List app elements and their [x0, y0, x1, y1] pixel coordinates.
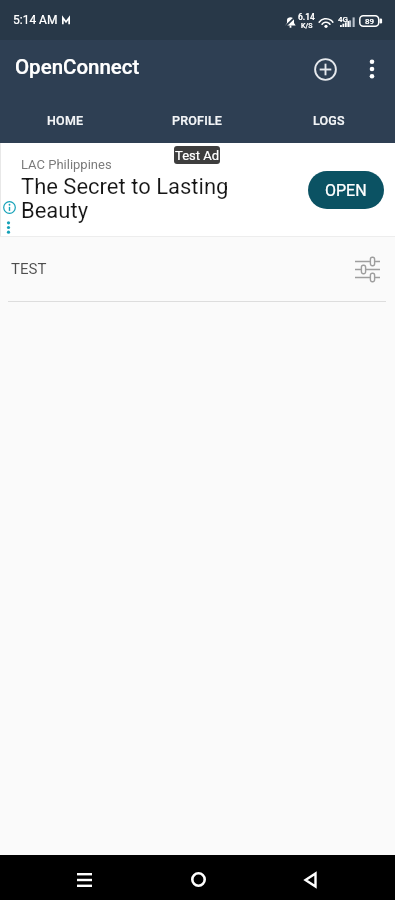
staticText: OPEN — [325, 181, 367, 200]
staticText: 5:14 AM — [13, 13, 58, 27]
button[interactable]: Home — [174, 857, 222, 900]
staticText: HOME — [47, 113, 84, 128]
staticText: PROFILE — [172, 113, 223, 128]
staticText: LAC Philippines — [21, 157, 112, 172]
staticText: 89 — [365, 17, 375, 26]
staticText: Test Ad — [175, 148, 220, 163]
staticText: K/S — [301, 22, 313, 30]
button[interactable]: More options — [349, 46, 395, 92]
button[interactable]: TEST — [0, 237, 395, 301]
button[interactable]: Back — [286, 857, 334, 900]
button[interactable]: Settings — [347, 249, 387, 289]
staticText: 6.14 — [298, 12, 315, 22]
staticText: OpenConnect — [15, 55, 140, 79]
staticText: TEST — [11, 260, 47, 278]
button[interactable]: Recent apps — [60, 857, 108, 900]
button[interactable]: Add profile — [301, 45, 349, 93]
staticText: 4G — [338, 15, 348, 24]
staticText: The Secret to Lasting Beauty — [21, 174, 239, 223]
staticText: LOGS — [313, 113, 345, 128]
button[interactable]: PROFILE — [131, 98, 263, 143]
button[interactable]: OPEN — [308, 171, 384, 209]
button[interactable]: LOGS — [263, 98, 395, 143]
button[interactable]: HOME — [0, 98, 131, 143]
